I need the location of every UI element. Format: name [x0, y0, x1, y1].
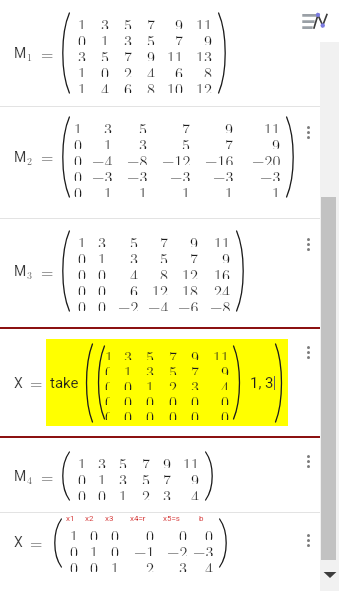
- staticText: 0: [205, 524, 214, 540]
- staticText: x1: [66, 514, 75, 523]
- staticText: 13: [196, 45, 213, 61]
- staticText: 9: [163, 452, 172, 468]
- staticText: −20: [252, 149, 281, 165]
- button[interactable]: X: [0, 327, 339, 438]
- staticText: 1: [111, 556, 120, 572]
- staticText: 1: [78, 13, 87, 29]
- staticText: =: [30, 371, 43, 394]
- staticText: 1: [78, 231, 87, 247]
- staticText: 0: [98, 484, 107, 500]
- staticText: 0: [105, 405, 110, 420]
- staticText: 5: [124, 13, 133, 29]
- staticText: 0: [221, 390, 230, 405]
- staticText: M: [14, 149, 27, 165]
- staticText: 3: [119, 468, 128, 484]
- staticText: 0: [124, 405, 133, 420]
- staticText: 1: [119, 484, 128, 500]
- button[interactable]: M: [0, 0, 339, 106]
- staticText: 1: [78, 77, 87, 93]
- staticText: 5: [147, 29, 156, 45]
- staticText: 9: [191, 345, 200, 360]
- staticText: 7: [225, 133, 234, 149]
- staticText: 3: [101, 13, 110, 29]
- staticText: 7: [175, 29, 184, 45]
- staticText: 0: [221, 405, 230, 420]
- staticText: 3: [179, 556, 188, 572]
- button[interactable]: X: [0, 513, 339, 589]
- staticText: 7: [169, 345, 178, 360]
- staticText: 3: [124, 29, 133, 45]
- staticText: 5: [160, 247, 169, 263]
- button[interactable]: M: [0, 219, 339, 327]
- staticText: 7: [190, 247, 199, 263]
- staticText: 4: [27, 473, 32, 487]
- staticText: 3: [27, 268, 32, 282]
- staticText: M: [14, 263, 27, 279]
- staticText: 4: [191, 484, 200, 500]
- button[interactable]: More options: [298, 448, 318, 474]
- button[interactable]: More options: [298, 339, 318, 365]
- staticText: x3: [105, 514, 114, 523]
- staticText: 1: [90, 540, 99, 556]
- staticText: 8: [147, 77, 156, 93]
- staticText: 0: [70, 540, 79, 556]
- button[interactable]: More options: [298, 527, 318, 553]
- staticText: 1: [146, 375, 155, 390]
- staticText: −8: [127, 149, 148, 165]
- staticText: x5=s: [163, 514, 180, 523]
- staticText: 7: [147, 13, 156, 29]
- staticText: 0: [78, 279, 87, 295]
- staticText: 2: [169, 375, 178, 390]
- staticText: −3: [92, 165, 113, 181]
- staticText: 0: [124, 390, 133, 405]
- staticText: 4: [205, 556, 214, 572]
- button[interactable]: M: [0, 438, 339, 512]
- button[interactable]: Toggle algebra and graphics views: [291, 0, 339, 42]
- staticText: 0: [90, 524, 99, 540]
- staticText: −3: [170, 165, 191, 181]
- staticText: 3: [78, 45, 87, 61]
- staticText: 2: [142, 484, 151, 500]
- staticText: 0: [74, 133, 83, 149]
- staticText: 1: [139, 181, 148, 197]
- button[interactable]: M: [0, 107, 339, 218]
- staticText: 6: [130, 279, 139, 295]
- staticText: 3: [191, 375, 200, 390]
- staticText: 1: [225, 181, 234, 197]
- staticText: 11: [264, 117, 281, 133]
- staticText: −16: [205, 149, 234, 165]
- staticText: 3: [98, 452, 107, 468]
- staticText: 6: [124, 77, 133, 93]
- staticText: 1: [105, 345, 110, 360]
- staticText: −6: [178, 295, 199, 311]
- staticText: −3: [127, 165, 148, 181]
- staticText: 4: [147, 61, 156, 77]
- staticText: 9: [272, 133, 281, 149]
- staticText: 11: [196, 13, 213, 29]
- staticText: 1: [98, 247, 107, 263]
- staticText: 2: [146, 556, 155, 572]
- staticText: 4: [221, 375, 230, 390]
- staticText: 1: [104, 181, 113, 197]
- staticText: 0: [74, 149, 83, 165]
- staticText: b: [199, 514, 204, 523]
- staticText: 1: [104, 133, 113, 149]
- staticText: =: [41, 260, 54, 283]
- staticText: 1: [74, 117, 83, 133]
- staticText: 0: [124, 375, 133, 390]
- staticText: 9: [147, 45, 156, 61]
- staticText: 5: [169, 360, 178, 375]
- staticText: −3: [193, 540, 214, 556]
- staticText: 0: [101, 61, 110, 77]
- button[interactable]: More options: [298, 119, 318, 145]
- staticText: 0: [191, 405, 200, 420]
- button[interactable]: More options: [298, 231, 318, 257]
- staticText: 0: [146, 524, 155, 540]
- staticText: 5: [182, 133, 191, 149]
- staticText: 7: [124, 45, 133, 61]
- button[interactable]: More options: [298, 18, 318, 44]
- staticText: 11: [214, 231, 231, 247]
- staticText: 0: [90, 556, 99, 572]
- staticText: 12: [152, 279, 169, 295]
- staticText: 3: [139, 133, 148, 149]
